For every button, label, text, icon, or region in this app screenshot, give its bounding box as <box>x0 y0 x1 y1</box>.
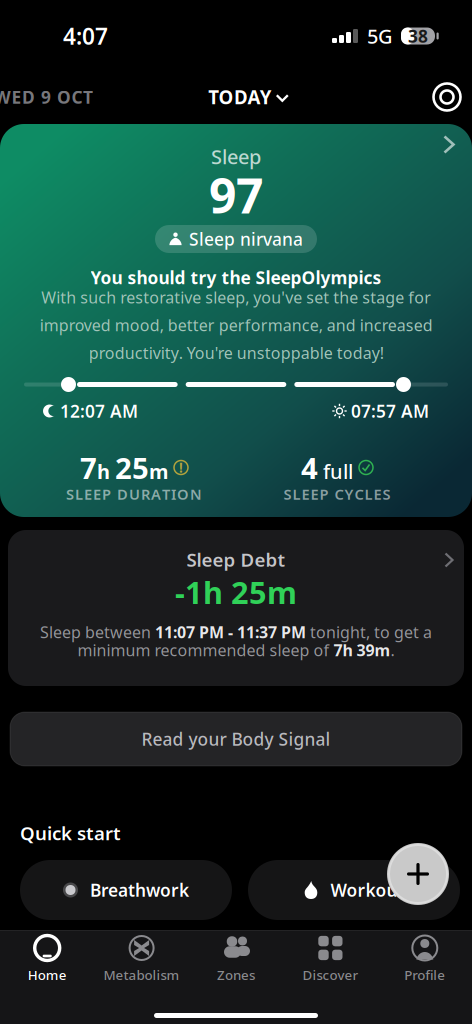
button[interactable]: Breathwork <box>20 860 232 920</box>
staticText: 12:07 AM <box>60 399 138 422</box>
staticText: You should try the SleepOlympics <box>90 266 381 289</box>
staticText: 7h 25m <box>80 448 169 487</box>
staticText: TODAY <box>208 85 272 109</box>
staticText: S L E E P C Y C L E S <box>283 484 390 504</box>
staticText: Profile <box>404 966 445 984</box>
staticText: 38 <box>408 24 428 47</box>
staticText: Sleep Debt <box>186 547 285 572</box>
button[interactable]: Sleep <box>0 124 472 517</box>
staticText: Metabolism <box>104 966 180 984</box>
staticText: ! <box>179 459 183 476</box>
staticText: Sleep nirvana <box>189 227 303 250</box>
button[interactable]: Zones <box>189 934 283 984</box>
button[interactable]: Workout <box>248 860 460 920</box>
button[interactable]: Sleep Debt <box>8 530 464 686</box>
button[interactable]: Discover <box>283 934 378 984</box>
staticText: Zones <box>217 966 255 984</box>
staticText: With such restorative sleep, you've set … <box>39 287 432 363</box>
staticText: . <box>390 639 394 661</box>
staticText: 4:07 <box>63 21 108 51</box>
staticText: 07:57 AM <box>351 399 429 422</box>
button[interactable]: Add <box>387 843 449 905</box>
staticText: 4 full <box>301 448 353 487</box>
staticText: Read your Body Signal <box>141 727 330 750</box>
button[interactable]: TODAY <box>196 85 276 109</box>
button[interactable]: Read your Body Signal <box>10 712 462 766</box>
staticText: Breathwork <box>90 878 189 901</box>
button[interactable]: Profile <box>378 934 472 984</box>
staticText: -1h 25m <box>175 572 297 612</box>
button[interactable]: Metabolism <box>94 934 189 984</box>
staticText: Home <box>28 966 67 984</box>
staticText: WED 9 OCT <box>0 85 93 108</box>
button[interactable]: Home <box>0 934 94 984</box>
staticText: 97 <box>209 163 263 227</box>
staticText: Sleep between <box>40 621 155 643</box>
staticText: 7h 39m <box>333 639 390 661</box>
staticText: Sleep <box>211 143 261 170</box>
staticText: Quick start <box>20 821 121 845</box>
button[interactable]: Ring status <box>430 80 464 114</box>
staticText: S L E E P D U R A T I O N <box>66 484 202 504</box>
staticText: minimum recommended sleep of <box>77 639 333 661</box>
staticText: 11:07 PM - 11:37 PM <box>155 621 306 643</box>
staticText: Discover <box>302 966 358 984</box>
staticText: tonight, to get a <box>306 621 432 643</box>
staticText: Workout <box>330 878 404 901</box>
staticText: 5G <box>367 23 393 49</box>
